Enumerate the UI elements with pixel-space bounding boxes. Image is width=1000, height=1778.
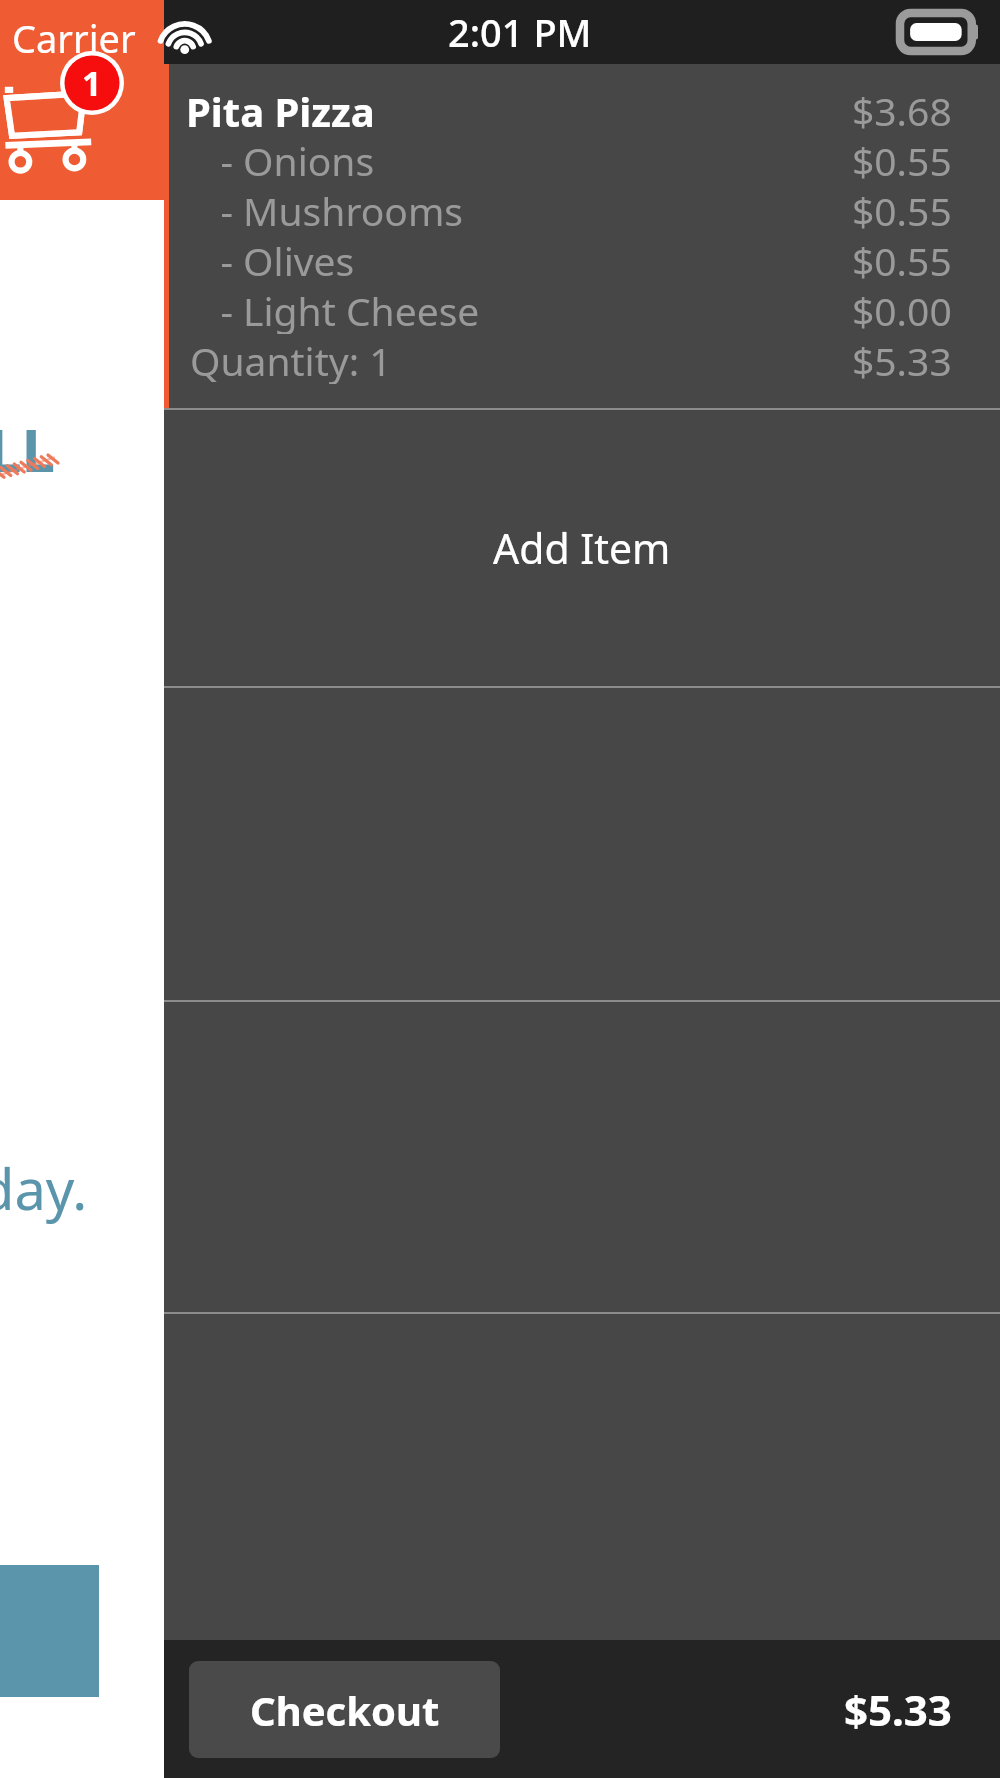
staticText: - Onions bbox=[190, 134, 375, 184]
staticText: 2:01 PM bbox=[448, 6, 592, 58]
staticText: $0.00 bbox=[852, 284, 952, 334]
staticText: Pita Pizza bbox=[186, 84, 375, 134]
staticText: Checkout bbox=[250, 1683, 440, 1737]
staticText: LL bbox=[0, 408, 56, 490]
staticText: $0.55 bbox=[852, 184, 952, 234]
staticText: - Light Cheese bbox=[190, 284, 480, 334]
staticText: day. bbox=[0, 1150, 88, 1226]
staticText: $0.55 bbox=[852, 134, 952, 184]
staticText: Add Item bbox=[493, 520, 671, 576]
staticText: $5.33 bbox=[852, 334, 952, 384]
button[interactable]: Pita Pizza bbox=[164, 64, 1000, 408]
staticText: - Mushrooms bbox=[190, 184, 464, 234]
button[interactable]: Checkout bbox=[189, 1661, 500, 1758]
button[interactable]: Add Item bbox=[164, 410, 1000, 686]
staticText: $0.55 bbox=[852, 234, 952, 284]
staticText: $5.33 bbox=[844, 1681, 952, 1738]
staticText: Carrier bbox=[12, 12, 136, 64]
staticText: 1 bbox=[82, 60, 102, 106]
staticText: Quantity: 1 bbox=[190, 334, 392, 384]
button[interactable]: Cart bbox=[0, 58, 120, 176]
staticText: - Olives bbox=[190, 234, 355, 284]
staticText: $3.68 bbox=[852, 84, 952, 134]
